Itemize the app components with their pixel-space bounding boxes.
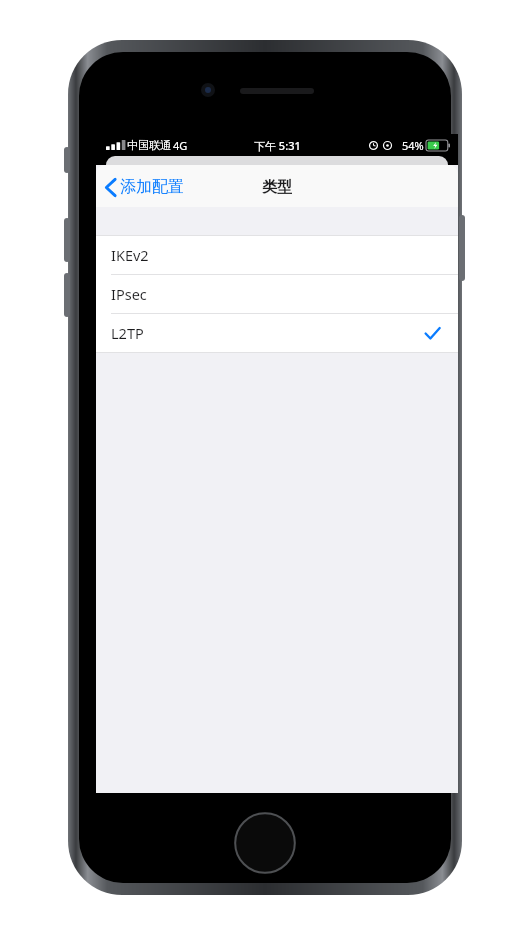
staticText: 下午 5:31 <box>254 138 301 153</box>
staticText: IPsec <box>111 284 147 304</box>
staticText: 54% <box>402 138 424 153</box>
button[interactable]: L2TP <box>96 314 458 352</box>
button[interactable]: IKEv2 <box>96 236 458 274</box>
other: Selected <box>425 327 440 340</box>
staticText: L2TP <box>111 323 144 343</box>
staticText: 4G <box>173 138 188 153</box>
staticText: 中国联通 <box>127 138 171 152</box>
staticText: 添加配置 <box>120 177 184 197</box>
button[interactable]: IPsec <box>96 275 458 313</box>
button[interactable]: 添加配置 <box>96 173 192 201</box>
staticText: IKEv2 <box>111 245 149 265</box>
staticText: 类型 <box>262 178 292 197</box>
